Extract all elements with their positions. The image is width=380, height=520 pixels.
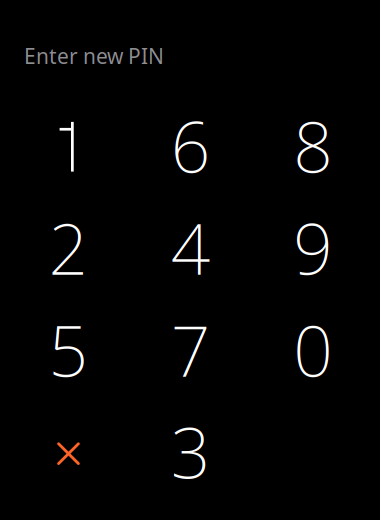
button[interactable]: 3 xyxy=(130,401,252,503)
staticText: 3 xyxy=(171,406,211,498)
button[interactable]: 9 xyxy=(252,197,374,299)
button[interactable]: 5 xyxy=(7,299,130,401)
staticText: 2 xyxy=(48,202,88,294)
button[interactable]: 8 xyxy=(252,95,374,197)
staticText: Enter new PIN xyxy=(24,41,164,70)
staticText: 0 xyxy=(293,304,333,396)
button[interactable]: 1 xyxy=(7,95,130,197)
button[interactable]: 6 xyxy=(130,95,252,197)
staticText: 4 xyxy=(171,202,211,294)
staticText: 6 xyxy=(171,100,211,192)
staticText: 8 xyxy=(293,100,333,192)
button[interactable]: 0 xyxy=(252,299,374,401)
staticText: 5 xyxy=(48,304,88,396)
button[interactable]: 7 xyxy=(130,299,252,401)
staticText: 7 xyxy=(171,304,211,396)
button[interactable]: 4 xyxy=(130,197,252,299)
button[interactable]: 2 xyxy=(7,197,130,299)
button[interactable]: Cancel xyxy=(7,401,130,503)
staticText: 9 xyxy=(293,202,333,294)
